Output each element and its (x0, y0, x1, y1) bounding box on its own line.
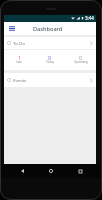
button[interactable]: Recent apps (73, 164, 87, 178)
staticText: To-Do (13, 40, 25, 46)
button[interactable]: Back (15, 164, 29, 178)
staticText: 0 (79, 54, 82, 61)
button[interactable]: Home (44, 164, 58, 178)
staticText: Today (46, 60, 54, 64)
button[interactable]: Events (4, 73, 96, 87)
staticText: Late (16, 60, 22, 64)
staticText: 3:44 (85, 15, 94, 21)
staticText: 0 (48, 54, 51, 61)
button[interactable]: Open navigation menu (4, 22, 19, 35)
staticText: Dashboard (33, 25, 63, 33)
button[interactable]: 1 (4, 50, 34, 70)
staticText: Events (13, 77, 27, 83)
staticText: Upcoming (74, 60, 88, 64)
button[interactable]: 0 (34, 50, 65, 70)
staticText: 1 (18, 54, 21, 61)
button[interactable]: To-Do (4, 37, 96, 70)
button[interactable]: 0 (65, 50, 96, 70)
